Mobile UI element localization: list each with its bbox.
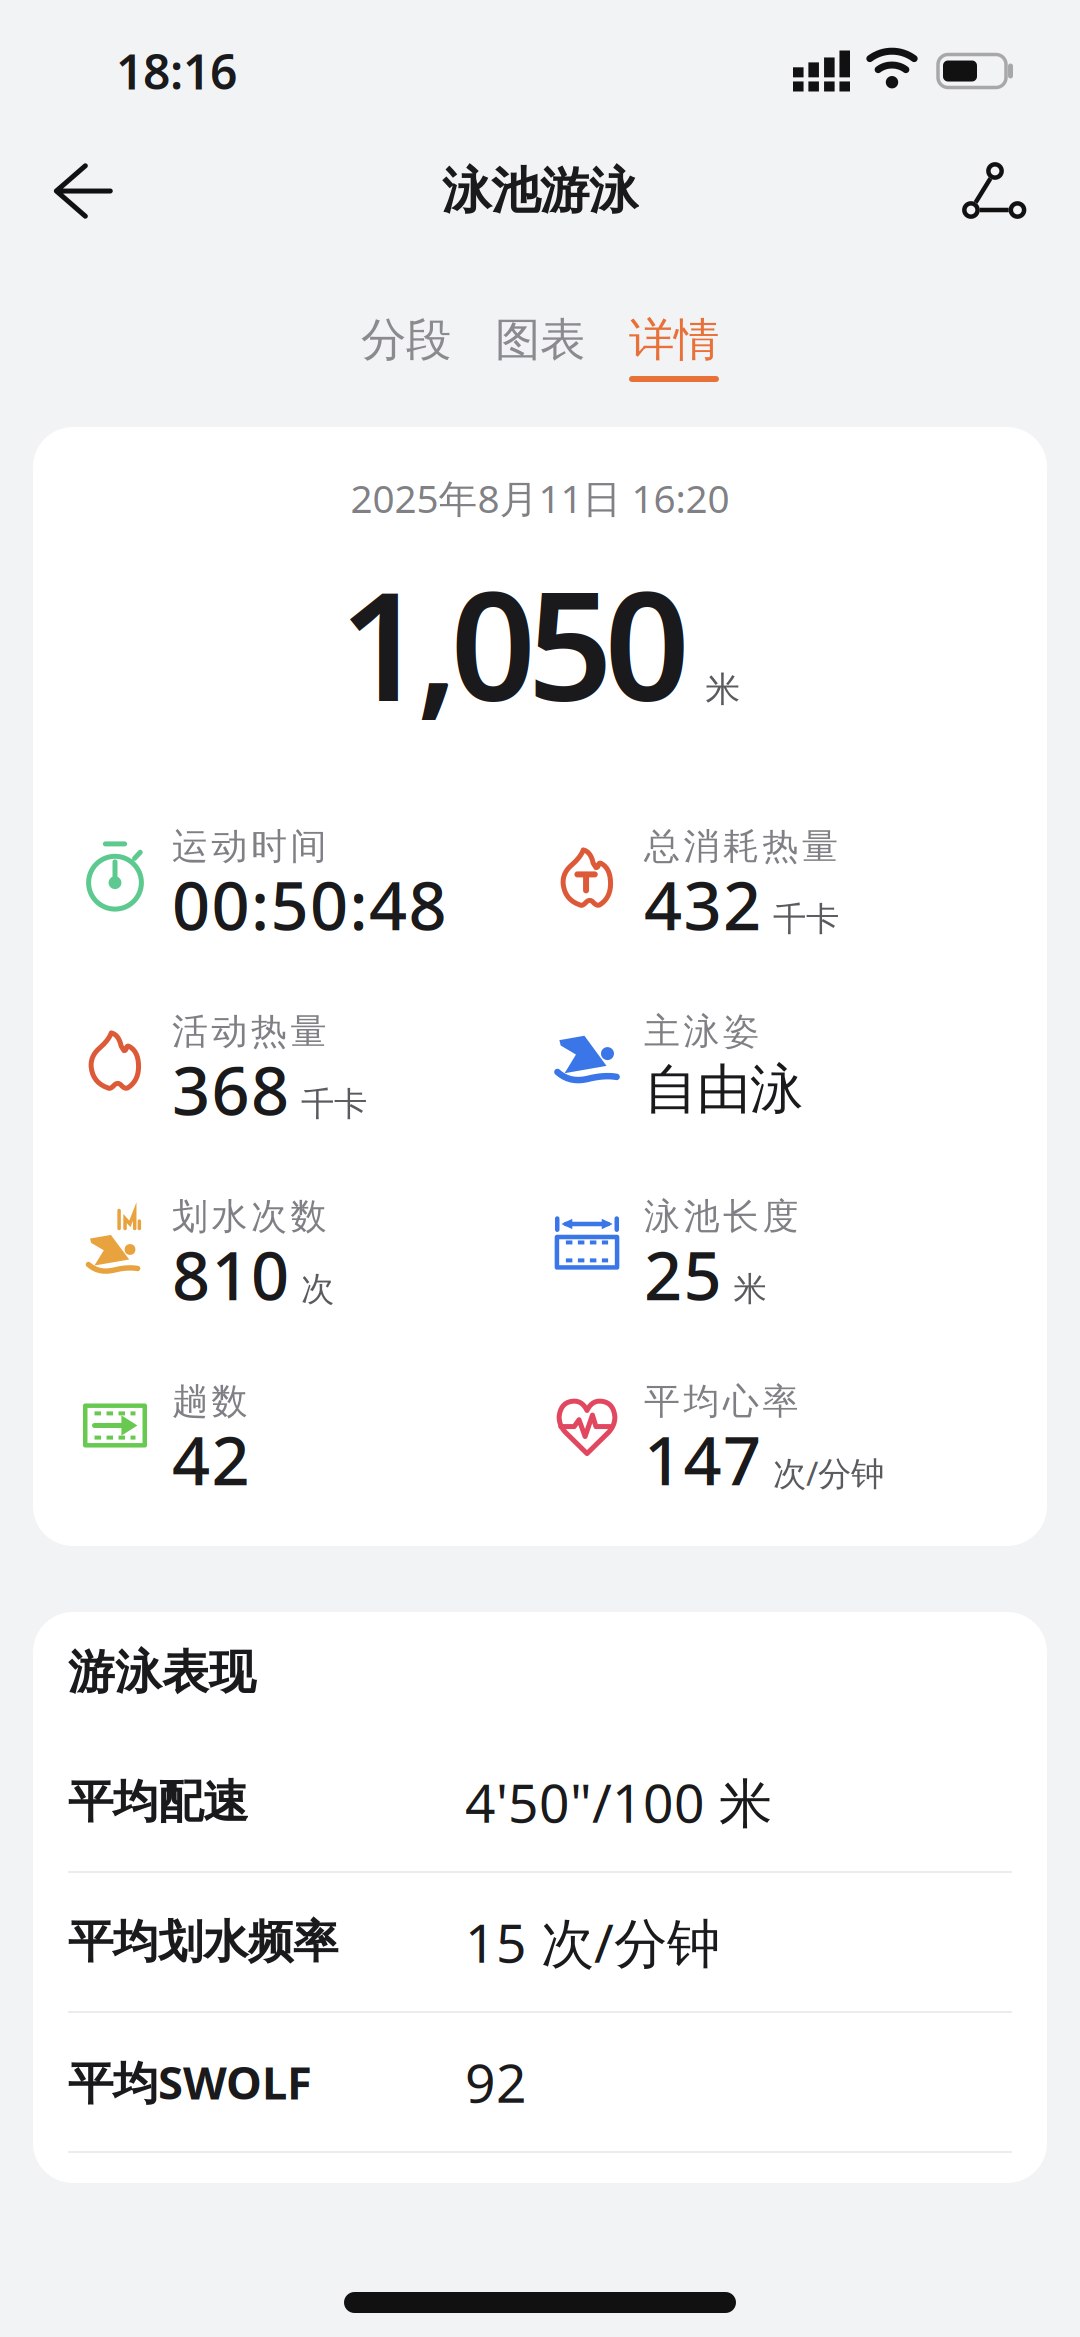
- staticText: 活动热量: [172, 1009, 326, 1054]
- staticText: 1,050: [339, 544, 689, 742]
- staticText: 147: [644, 1415, 761, 1504]
- staticText: 25: [644, 1230, 721, 1319]
- staticText: 92: [465, 2047, 527, 2117]
- button[interactable]: Share: [938, 149, 1080, 233]
- button[interactable]: Back: [0, 151, 132, 231]
- staticText: 游泳表现: [68, 1644, 256, 1701]
- staticText: 00:50:48: [172, 860, 446, 949]
- staticText: 泳池游泳: [442, 161, 638, 221]
- staticText: 总消耗热量: [644, 824, 838, 869]
- staticText: 810: [172, 1230, 289, 1319]
- staticText: 运动时间: [172, 824, 326, 869]
- staticText: 千卡: [773, 899, 839, 940]
- staticText: 15 次/分钟: [465, 1907, 720, 1977]
- staticText: 18:16: [116, 39, 237, 103]
- staticText: 主泳姿: [644, 1009, 759, 1054]
- staticText: 432: [644, 860, 761, 949]
- staticText: 图表: [495, 312, 585, 368]
- staticText: 4'50"/100 米: [465, 1767, 772, 1837]
- button[interactable]: 详情: [629, 312, 719, 382]
- staticText: 千卡: [301, 1084, 367, 1125]
- button[interactable]: 分段: [361, 312, 451, 368]
- staticText: 米: [733, 1269, 766, 1310]
- staticText: 平均划水频率: [68, 1914, 338, 1970]
- staticText: 平均SWOLF: [68, 2052, 312, 2112]
- button[interactable]: 图表: [495, 312, 585, 368]
- staticText: 详情: [629, 312, 719, 368]
- staticText: 368: [172, 1045, 289, 1134]
- staticText: 趟数: [172, 1379, 247, 1424]
- staticText: 划水次数: [172, 1194, 326, 1239]
- staticText: 次: [301, 1269, 334, 1310]
- staticText: 次/分钟: [773, 1451, 884, 1495]
- staticText: 平均心率: [644, 1379, 798, 1424]
- staticText: 2025年8月11日 16:20: [350, 472, 729, 524]
- staticText: 自由泳: [644, 1057, 803, 1122]
- staticText: 米: [705, 668, 740, 711]
- staticText: 平均配速: [68, 1774, 248, 1830]
- staticText: 泳池长度: [644, 1194, 798, 1239]
- staticText: 分段: [361, 312, 451, 368]
- staticText: 42: [172, 1415, 249, 1504]
